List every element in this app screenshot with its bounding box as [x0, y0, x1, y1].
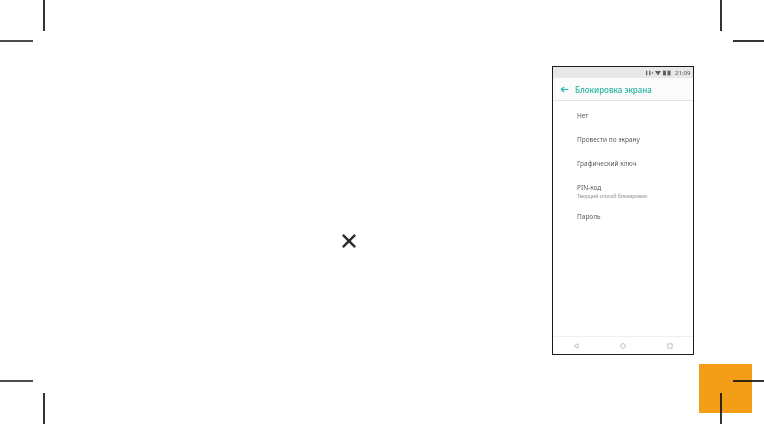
staticText: PIN-код [577, 183, 602, 192]
button[interactable]: Back [553, 337, 599, 354]
button[interactable]: Back [553, 78, 575, 100]
staticText: Блокировка экрана [575, 84, 652, 95]
button[interactable]: Графический ключ [553, 156, 693, 171]
staticText: Пароль [577, 212, 601, 221]
staticText: Графический ключ [577, 159, 637, 168]
staticText: 21:09 [675, 69, 691, 77]
button[interactable]: Home [599, 337, 646, 354]
button[interactable]: Recent apps [646, 337, 693, 354]
staticText: Текущий способ блокировки [577, 193, 647, 200]
button[interactable]: PIN-код [553, 180, 693, 203]
button[interactable]: Пароль [553, 209, 693, 224]
staticText: Провести по экрану [577, 135, 640, 144]
staticText: Нет [577, 111, 589, 120]
button[interactable]: Нет [553, 108, 693, 123]
button[interactable]: Провести по экрану [553, 132, 693, 147]
button[interactable]: Close [338, 230, 360, 252]
